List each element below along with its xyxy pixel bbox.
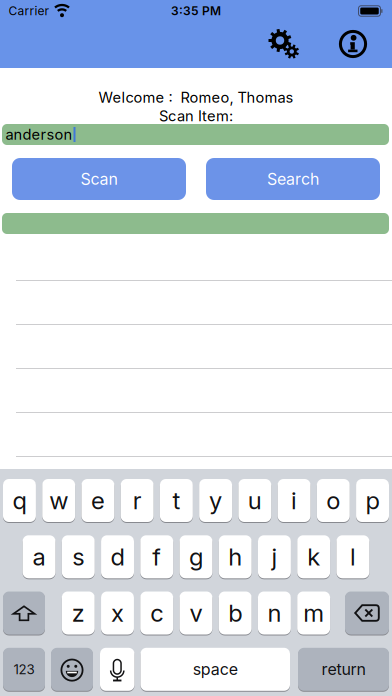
staticText: 3:35 PM [171, 4, 221, 18]
staticText: b [228, 599, 242, 627]
staticText: y [209, 486, 222, 515]
button[interactable]: a [23, 535, 55, 578]
staticText: v [189, 599, 202, 627]
button[interactable]: 123 [3, 648, 45, 691]
staticText: Scan Item: [159, 107, 233, 125]
button[interactable]: j [258, 535, 291, 578]
staticText: w [49, 486, 68, 515]
staticText: space [193, 660, 238, 679]
button[interactable]: k [297, 535, 330, 578]
button[interactable]: g [179, 535, 212, 578]
button[interactable]: f [140, 535, 173, 578]
button[interactable]: n [258, 591, 291, 634]
staticText: g [189, 543, 203, 571]
button[interactable]: c [140, 591, 173, 634]
button[interactable]: Shift [3, 591, 45, 634]
button[interactable]: o [317, 479, 350, 522]
staticText: u [248, 486, 262, 515]
staticText: Welcome : Romeo, Thomas [98, 89, 293, 106]
staticText: n [267, 599, 281, 627]
staticText: Carrier [8, 4, 49, 18]
button[interactable]: Scan [12, 158, 186, 200]
staticText: i [291, 486, 297, 515]
button[interactable]: Emoji [51, 648, 93, 691]
staticText: e [91, 486, 105, 515]
button[interactable]: e [81, 479, 114, 522]
button[interactable]: w [42, 479, 75, 522]
button[interactable]: Dictate [100, 648, 134, 691]
button[interactable]: Search [206, 158, 380, 200]
staticText: anderson [5, 126, 72, 143]
button[interactable]: Settings [262, 24, 306, 64]
staticText: o [326, 486, 340, 515]
button[interactable]: q [3, 479, 36, 522]
button[interactable]: s [62, 535, 95, 578]
button[interactable]: Delete [345, 591, 389, 634]
staticText: h [228, 543, 242, 571]
staticText: m [303, 599, 324, 627]
staticText: r [133, 486, 142, 515]
staticText: j [271, 543, 277, 571]
staticText: k [307, 543, 320, 571]
staticText: Search [267, 170, 319, 188]
button[interactable]: b [219, 591, 252, 634]
staticText: p [365, 486, 379, 515]
button[interactable]: return [298, 648, 389, 691]
staticText: l [350, 543, 356, 571]
button[interactable]: p [356, 479, 389, 522]
staticText: 123 [13, 661, 34, 677]
button[interactable]: d [101, 535, 134, 578]
button[interactable]: v [179, 591, 212, 634]
button[interactable]: z [62, 591, 95, 634]
button[interactable]: space [140, 648, 290, 691]
button[interactable]: m [297, 591, 330, 634]
staticText: a [33, 543, 46, 571]
staticText: x [111, 599, 124, 627]
button[interactable]: x [101, 591, 134, 634]
button[interactable]: h [219, 535, 252, 578]
staticText: d [110, 543, 124, 571]
staticText: Scan [80, 170, 117, 188]
staticText: f [152, 543, 161, 571]
staticText: q [12, 486, 26, 515]
button[interactable]: l [336, 535, 369, 578]
staticText: c [150, 599, 163, 627]
button[interactable]: u [238, 479, 271, 522]
staticText: z [72, 599, 85, 627]
button[interactable]: Info [331, 24, 375, 64]
staticText: s [72, 543, 84, 571]
staticText: t [172, 486, 180, 515]
staticText: return [321, 660, 365, 679]
button[interactable]: y [199, 479, 232, 522]
button[interactable]: i [278, 479, 310, 522]
button[interactable]: r [121, 479, 154, 522]
button[interactable]: t [160, 479, 193, 522]
